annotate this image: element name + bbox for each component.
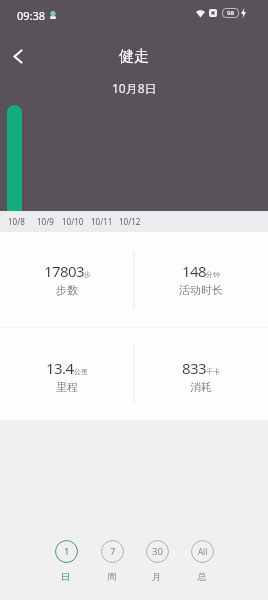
staticText: 10/9 bbox=[37, 216, 54, 227]
staticText: 13.4 bbox=[46, 358, 74, 378]
staticText: 步数 bbox=[56, 283, 78, 297]
staticText: 09:38 bbox=[17, 8, 46, 22]
staticText: 月 bbox=[152, 571, 162, 583]
staticText: 30 bbox=[152, 545, 163, 558]
staticText: 10/8 bbox=[8, 216, 25, 227]
staticText: 10/10 bbox=[62, 216, 84, 227]
staticText: 总 bbox=[197, 571, 207, 583]
staticText: 步 bbox=[84, 270, 91, 279]
staticText: 分钟 bbox=[206, 270, 220, 279]
staticText: 833 bbox=[182, 358, 206, 378]
staticText: 1 bbox=[64, 545, 70, 558]
staticText: 消耗 bbox=[190, 380, 212, 394]
staticText: 10月8日 bbox=[112, 80, 157, 96]
button[interactable]: 833 bbox=[134, 327, 268, 422]
staticText: 10/11 bbox=[91, 216, 113, 227]
staticText: 健走 bbox=[119, 47, 149, 66]
staticText: 公里 bbox=[74, 367, 88, 376]
button[interactable] bbox=[5, 44, 31, 70]
staticText: 千卡 bbox=[206, 367, 220, 376]
staticText: All bbox=[198, 546, 208, 557]
button[interactable]: 7 bbox=[92, 535, 132, 587]
staticText: 周 bbox=[107, 571, 117, 583]
staticText: 98 bbox=[227, 9, 234, 17]
staticText: 活动时长 bbox=[179, 283, 223, 297]
staticText: 17803 bbox=[44, 261, 84, 281]
staticText: 日 bbox=[61, 571, 71, 583]
button[interactable]: 30 bbox=[137, 535, 177, 587]
staticText: 148 bbox=[182, 261, 206, 281]
staticText: 7 bbox=[110, 545, 116, 558]
staticText: 里程 bbox=[56, 380, 78, 394]
button[interactable]: 148 bbox=[134, 232, 268, 327]
button[interactable]: 13.4 bbox=[0, 327, 134, 422]
button[interactable]: All bbox=[182, 535, 222, 587]
button[interactable]: 17803 bbox=[0, 232, 134, 327]
staticText: 10/12 bbox=[119, 216, 141, 227]
button[interactable]: 1 bbox=[46, 535, 86, 587]
